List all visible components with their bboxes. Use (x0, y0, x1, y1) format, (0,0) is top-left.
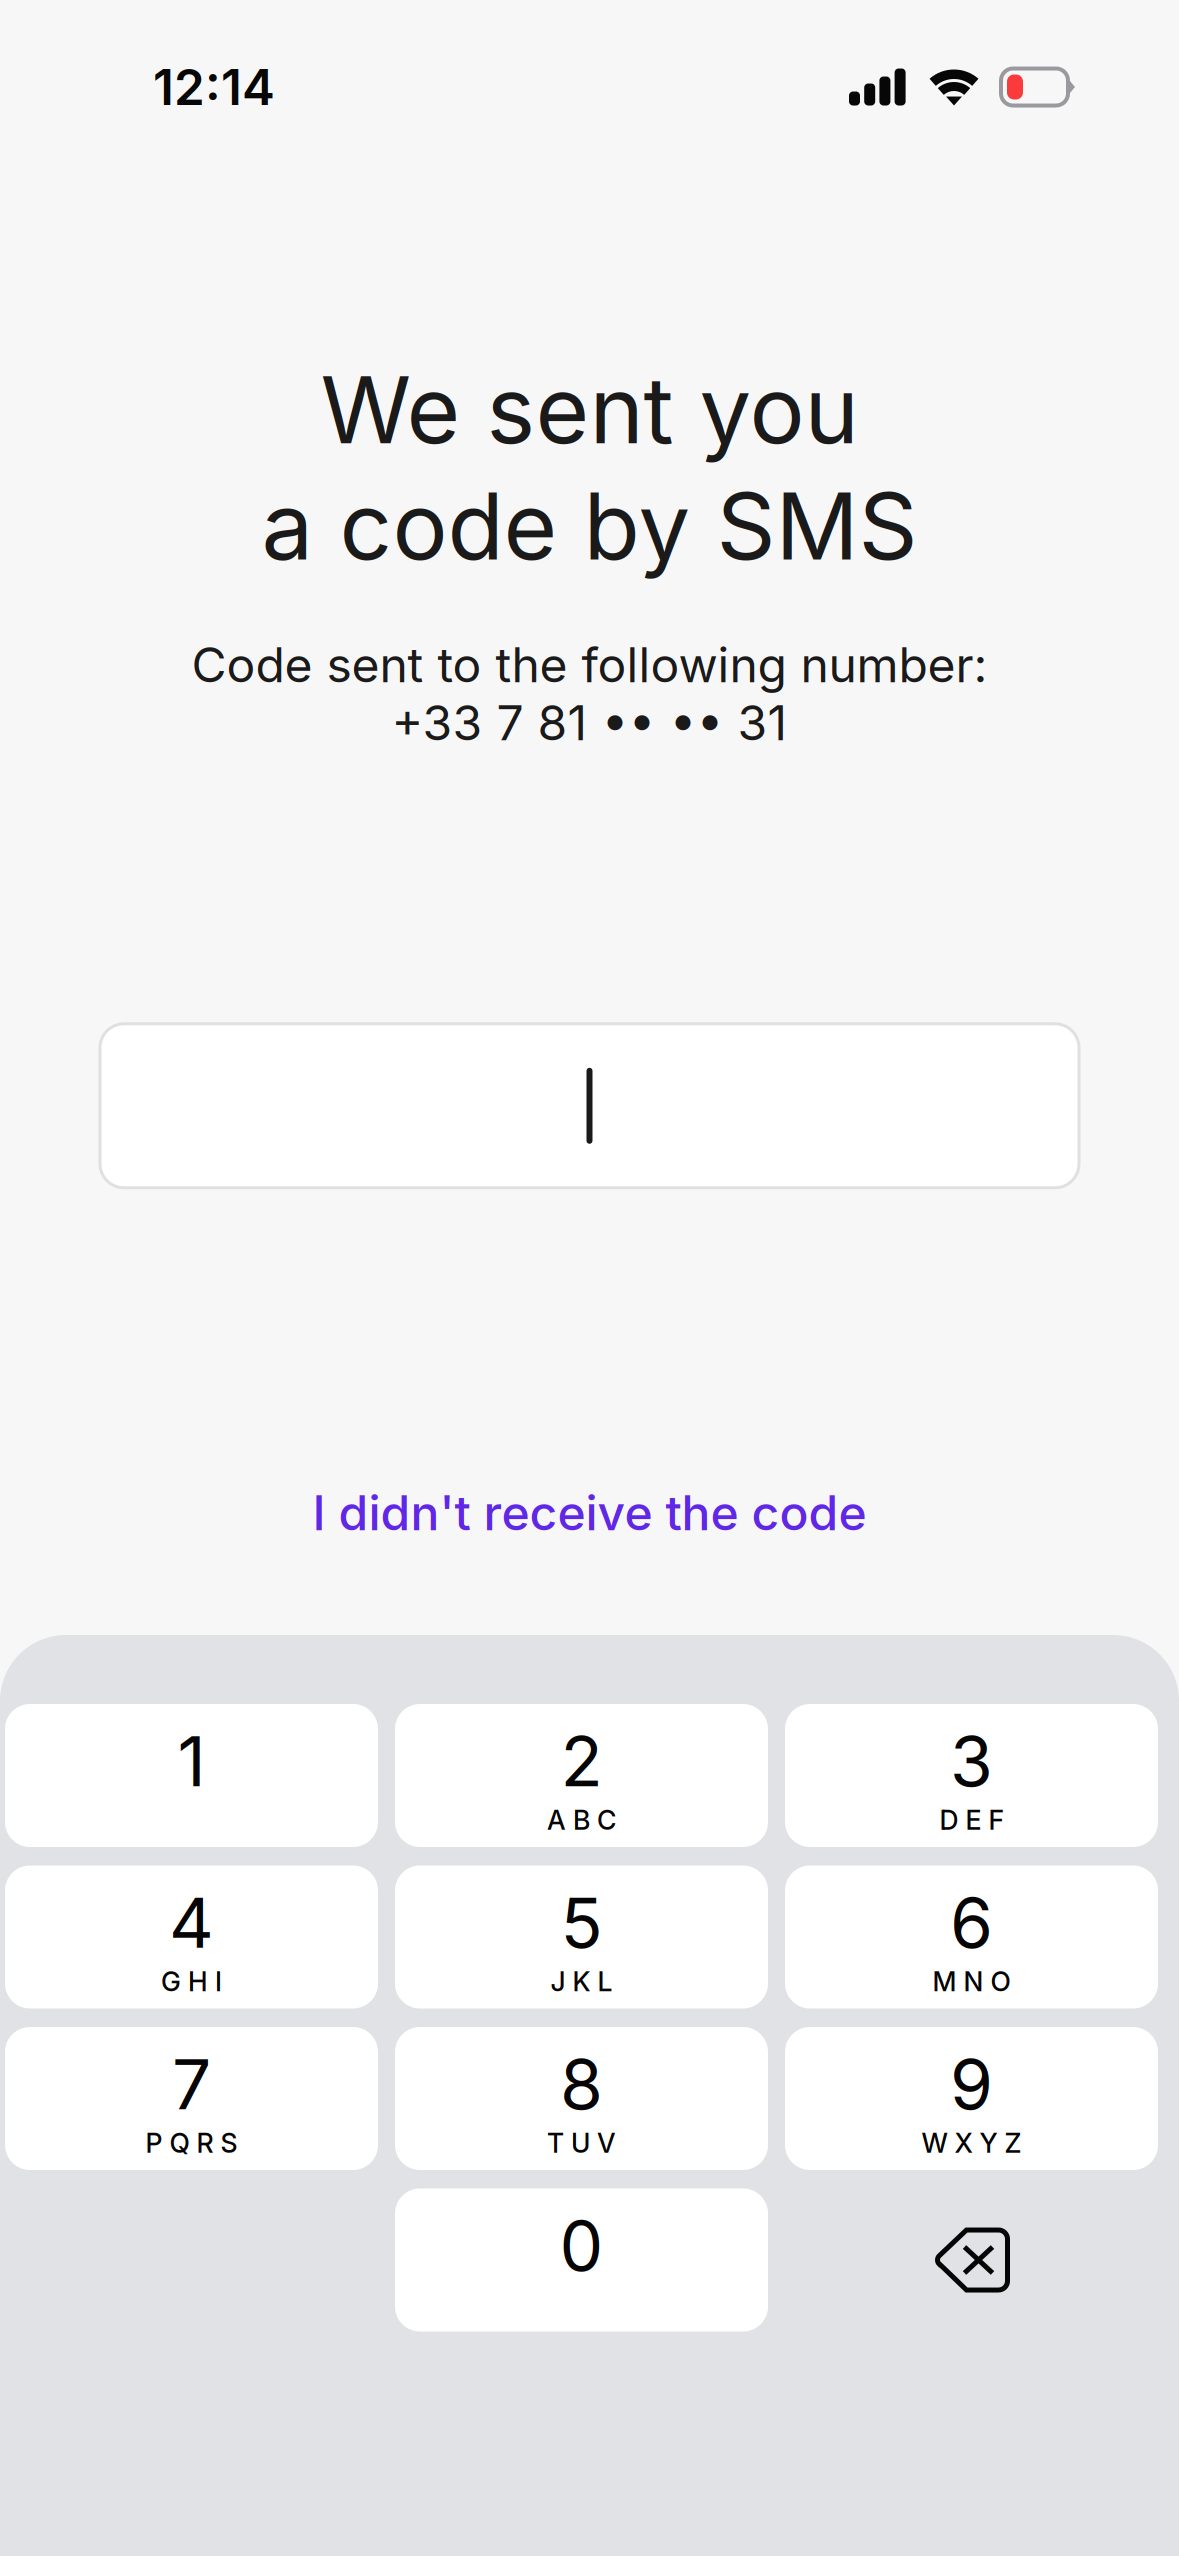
button[interactable]: 5 (395, 1865, 768, 2008)
staticText: 7 (172, 2042, 211, 2126)
staticText: P Q R S (145, 2127, 237, 2159)
staticText: 1 (177, 1719, 205, 1803)
staticText: We sent you (320, 354, 858, 465)
button[interactable]: Verification code (100, 1024, 1079, 1188)
button[interactable]: 0 (395, 2188, 768, 2331)
staticText: Code sent to the following number: (191, 636, 987, 694)
staticText: 6 (950, 1880, 993, 1964)
staticText: a code by SMS (261, 470, 917, 582)
button[interactable]: 9 (785, 2027, 1158, 2170)
staticText: M N O (932, 1965, 1010, 1998)
button[interactable]: 1 (5, 1704, 378, 1847)
staticText: 12:14 (153, 57, 275, 117)
button[interactable]: 2 (395, 1704, 768, 1847)
staticText: I didn't receive the code (312, 1484, 866, 1542)
staticText: 9 (950, 2042, 993, 2126)
staticText: 3 (950, 1719, 993, 1803)
staticText: 5 (560, 1880, 602, 1964)
staticText: 4 (169, 1880, 214, 1964)
button[interactable]: 7 (5, 2027, 378, 2170)
staticText: G H I (161, 1965, 222, 1998)
staticText: J K L (550, 1965, 612, 1998)
button[interactable]: 8 (395, 2027, 768, 2170)
staticText: 8 (560, 2042, 603, 2126)
staticText: D E F (939, 1804, 1003, 1836)
button[interactable]: 4 (5, 1865, 378, 2008)
button[interactable]: Delete (785, 2188, 1158, 2331)
staticText: A B C (547, 1804, 616, 1836)
staticText: T U V (547, 2127, 616, 2159)
button[interactable]: 3 (785, 1704, 1158, 1847)
button[interactable]: I didn't receive the code (288, 1472, 890, 1554)
staticText: 0 (559, 2203, 603, 2287)
staticText: +33 7 81 •• •• 31 (391, 694, 787, 752)
button[interactable]: 6 (785, 1865, 1158, 2008)
staticText: 2 (560, 1719, 602, 1803)
staticText: W X Y Z (921, 2127, 1021, 2159)
